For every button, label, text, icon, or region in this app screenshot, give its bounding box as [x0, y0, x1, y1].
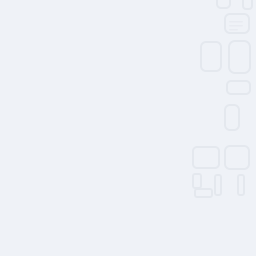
- button[interactable]: Loading text card: [225, 14, 249, 33]
- button[interactable]: Loading card 4: [193, 147, 219, 168]
- button[interactable]: Loading card 3: [225, 105, 239, 130]
- button[interactable]: Loading card 1: [201, 42, 221, 71]
- button[interactable]: Loading item 4: [195, 189, 212, 197]
- button[interactable]: Loading card 5: [225, 146, 249, 169]
- button[interactable]: Loading item 2: [243, 0, 252, 9]
- button[interactable]: Loading card 2: [229, 41, 250, 73]
- button[interactable]: Loading item 5: [215, 175, 221, 195]
- button[interactable]: Loading item 3: [193, 174, 201, 188]
- button[interactable]: Loading item 6: [238, 175, 244, 195]
- button[interactable]: Loading tag: [227, 81, 250, 94]
- button[interactable]: Loading item 1: [217, 0, 230, 8]
